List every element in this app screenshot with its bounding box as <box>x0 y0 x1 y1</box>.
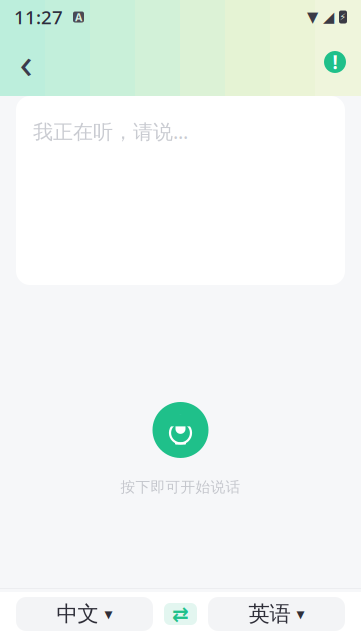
staticText: 英语 <box>248 601 290 627</box>
button[interactable]: Back <box>4 40 48 84</box>
button[interactable]: Hold to speak <box>152 402 208 458</box>
button[interactable]: 英语 <box>208 597 345 631</box>
staticText: 中文 <box>56 601 98 627</box>
staticText: ⇄ <box>172 603 189 625</box>
staticText: ▼ <box>307 9 318 25</box>
staticText: 按下即可开始说话 <box>120 478 240 496</box>
staticText: ! <box>332 50 337 74</box>
staticText: ‹ <box>19 34 32 90</box>
staticText: A <box>75 10 82 24</box>
staticText: ▾ <box>296 605 304 623</box>
button[interactable]: Info <box>313 40 357 84</box>
staticText: 我正在听，请说... <box>33 118 188 145</box>
staticText: ▾ <box>104 605 112 623</box>
staticText: ◢ <box>323 9 334 25</box>
button[interactable]: 中文 <box>16 597 153 631</box>
staticText: ⚡︎ <box>339 12 346 22</box>
staticText: 11:27 <box>14 5 63 29</box>
button[interactable]: Swap languages <box>164 603 197 625</box>
